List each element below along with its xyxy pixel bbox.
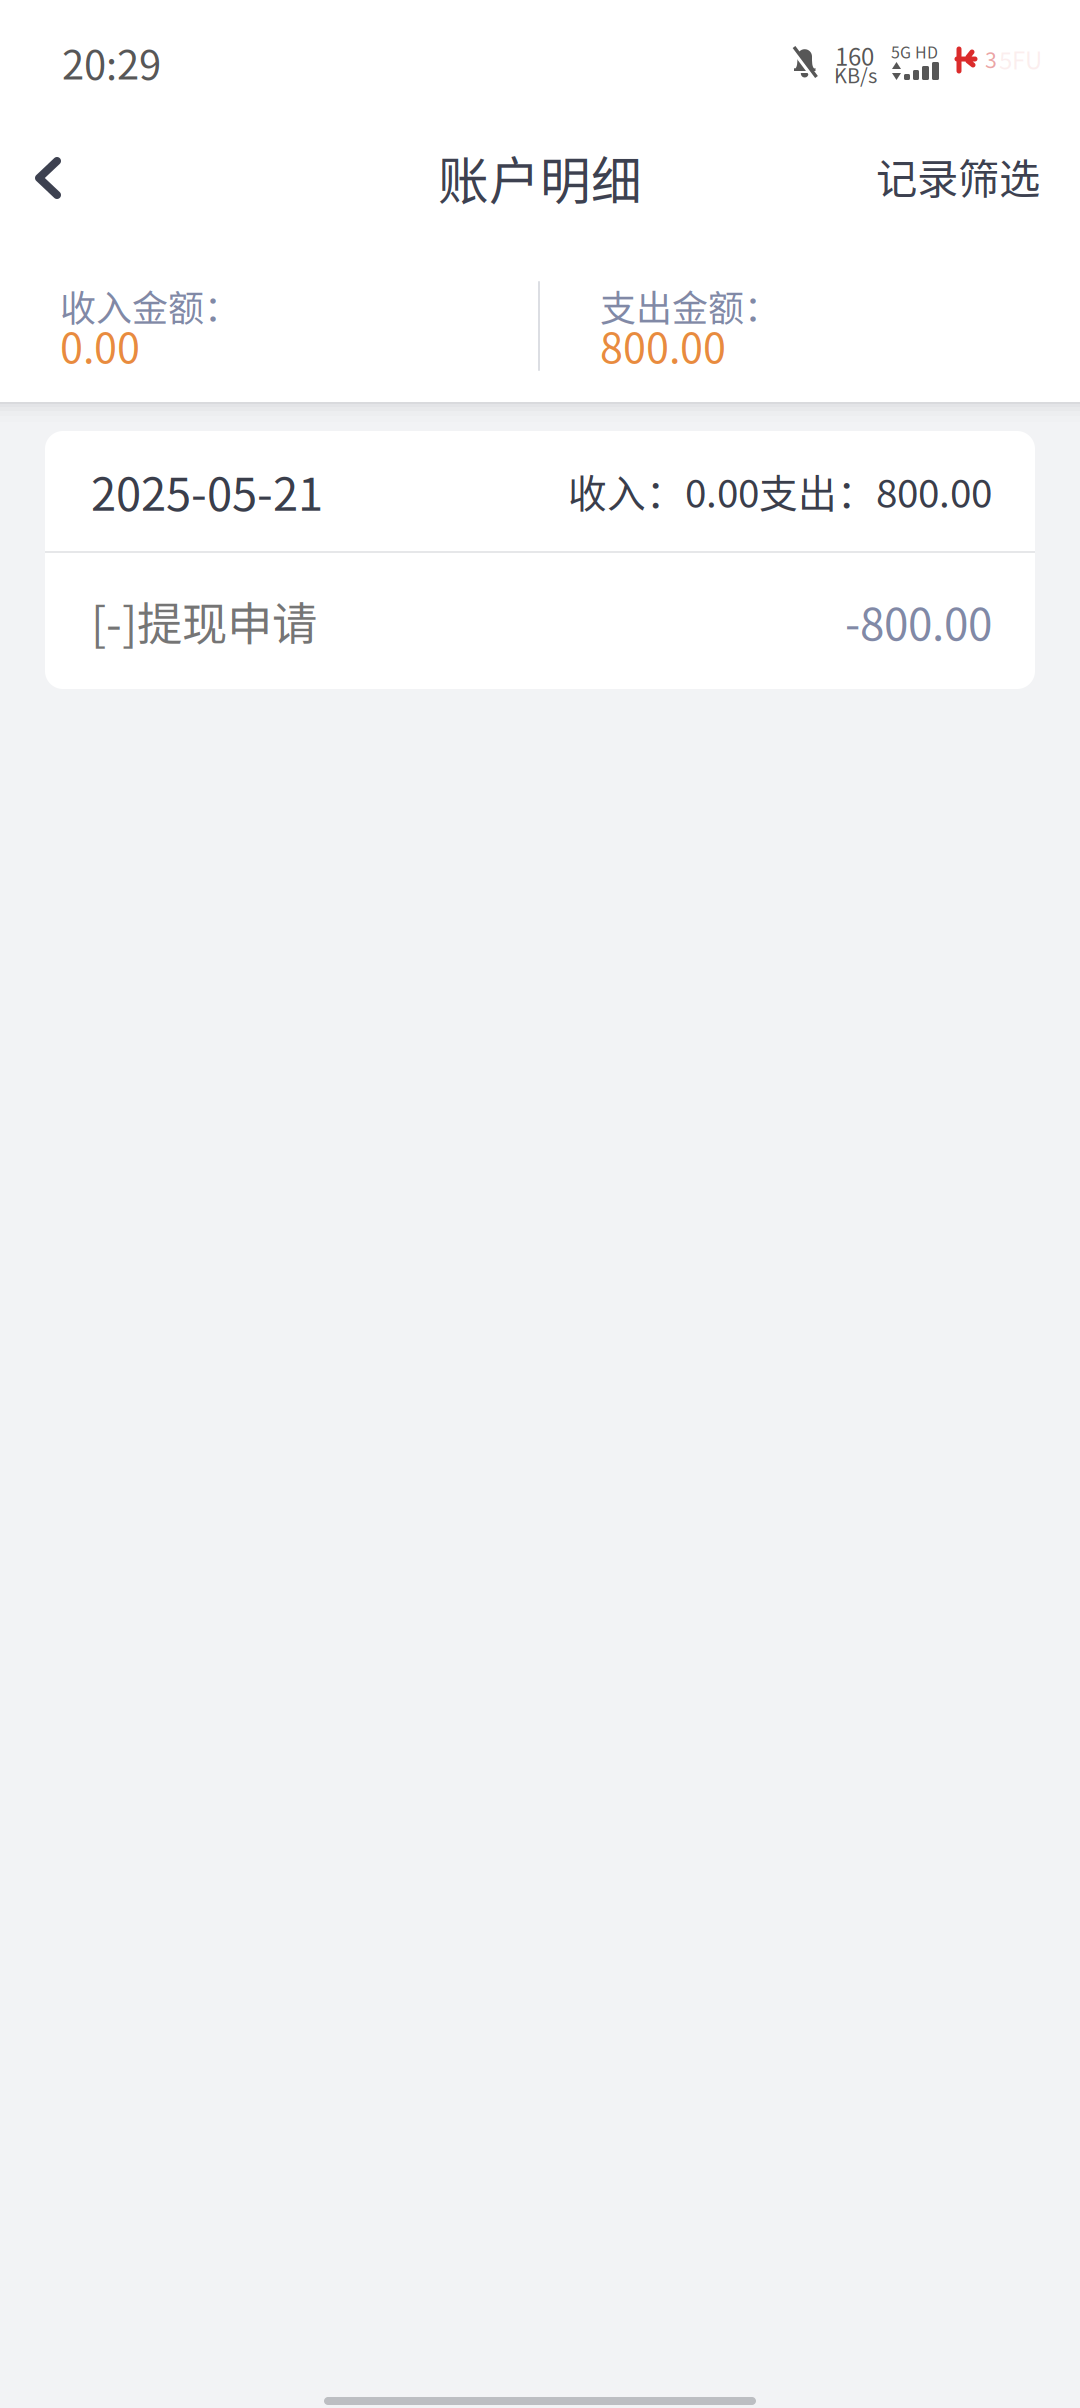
button[interactable]: 返回 — [0, 122, 102, 234]
button[interactable]: [-]提现申请 — [45, 553, 1035, 689]
staticText: KB/s — [834, 60, 877, 89]
staticText: 800.00 — [600, 315, 726, 375]
staticText: 5FU — [999, 42, 1042, 76]
staticText: 5G HD — [891, 40, 938, 63]
staticText: 收入：0.00支出：800.00 — [568, 463, 992, 519]
staticText: 20:29 — [62, 33, 161, 91]
button[interactable]: 记录筛选 — [848, 110, 1080, 240]
staticText: 记录筛选 — [876, 146, 1040, 206]
staticText: 0.00 — [60, 315, 140, 375]
staticText: 收入金额： — [60, 280, 240, 332]
staticText: [-]提现申请 — [91, 588, 317, 654]
staticText: 账户明细 — [438, 141, 642, 214]
staticText: 2025-05-21 — [91, 458, 323, 524]
staticText: 支出金额： — [600, 280, 780, 332]
staticText: -800.00 — [845, 589, 992, 653]
staticText: 3 — [985, 44, 997, 74]
staticText: 160 — [835, 38, 874, 73]
